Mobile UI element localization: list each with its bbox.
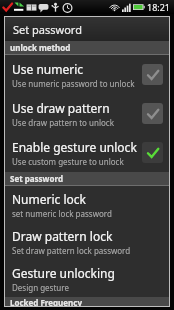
staticText: Use draw pattern to unlock [12, 117, 114, 128]
staticText: Gesture unlocking [12, 265, 115, 281]
staticText: Locked Frequency [10, 297, 82, 306]
button[interactable]: Enable gesture unlock [5, 133, 169, 172]
button[interactable]: Draw pattern lock [5, 223, 169, 260]
button[interactable]: Checked [142, 142, 163, 163]
staticText: set numeric lock password [12, 208, 112, 219]
button[interactable]: Use numeric password [5, 55, 169, 94]
staticText: Set password [10, 173, 63, 184]
staticText: Enable gesture unlock [12, 139, 137, 155]
staticText: Use numeric password [12, 61, 139, 77]
staticText: Design gesture [12, 282, 69, 293]
staticText: unlock method [10, 42, 71, 53]
staticText: Draw pattern lock [12, 228, 113, 244]
staticText: Set password [13, 22, 82, 37]
button[interactable]: Use draw pattern [5, 94, 169, 133]
button[interactable]: Unchecked [142, 64, 163, 85]
staticText: Numeric lock [12, 191, 86, 207]
staticText: Use draw pattern [12, 100, 110, 116]
staticText: 18:21 [147, 1, 171, 13]
staticText: Use numeric password to unlock [12, 78, 135, 89]
staticText: Use custom gesture to unlock [12, 156, 124, 167]
staticText: Set draw pattern lock password [12, 245, 131, 256]
button[interactable]: Numeric lock [5, 186, 169, 223]
button[interactable]: Gesture unlocking [5, 260, 169, 297]
button[interactable]: Unchecked [142, 103, 163, 124]
